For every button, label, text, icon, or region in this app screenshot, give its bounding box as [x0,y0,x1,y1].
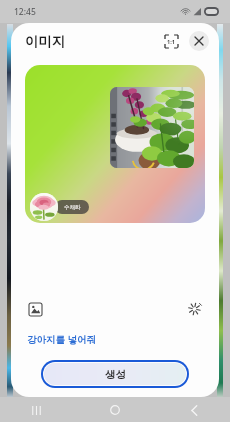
button[interactable]: Add image [23,297,47,321]
button[interactable]: Recent apps [22,399,50,421]
staticText: 이미지 [25,33,66,50]
button[interactable]: Aspect ratio 1:1 [161,31,181,51]
button[interactable]: 수채화 [30,193,64,221]
staticText: 수채화 [64,204,81,211]
staticText: 1:1 [167,38,175,45]
button[interactable]: Home [101,399,129,421]
button[interactable]: 생성 [44,363,186,385]
button[interactable]: AI enhance [183,297,207,321]
button[interactable]: 강아지를 넣어줘 [23,328,207,350]
button[interactable]: 수채화 [25,65,205,223]
button[interactable]: Back [180,399,208,421]
staticText: 12:45 [14,6,36,18]
staticText: 강아지를 넣어줘 [27,333,96,346]
button[interactable]: Close [189,31,209,51]
staticText: 생성 [105,368,126,381]
